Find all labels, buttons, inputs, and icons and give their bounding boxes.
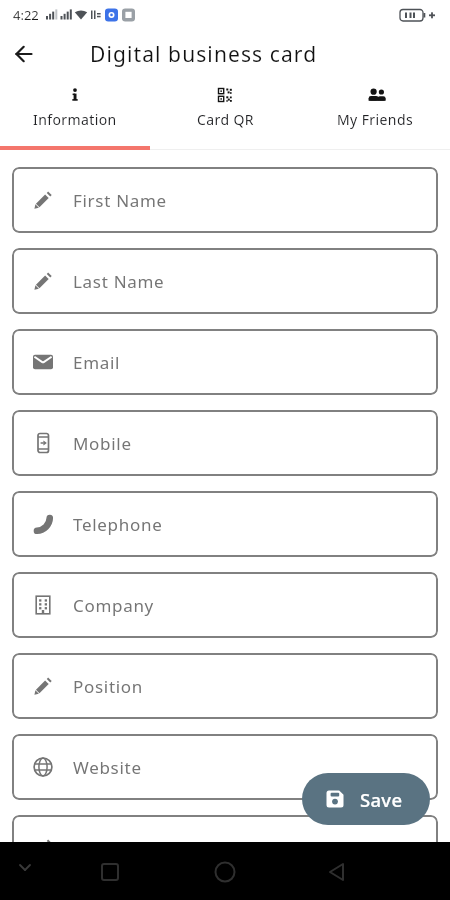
- staticText: Save: [360, 787, 403, 812]
- button[interactable]: Last Name: [12, 248, 438, 314]
- staticText: Position: [73, 675, 144, 698]
- staticText: Email: [73, 351, 121, 374]
- staticText: Last Name: [73, 270, 165, 293]
- button[interactable]: Mobile: [12, 410, 438, 476]
- staticText: Card QR: [197, 110, 254, 129]
- staticText: Website: [73, 756, 142, 779]
- staticText: Company: [73, 594, 154, 617]
- staticText: Telephone: [73, 513, 163, 536]
- button[interactable]: Address: [12, 815, 438, 881]
- button[interactable]: First Name: [12, 167, 438, 233]
- staticText: My Friends: [337, 110, 414, 129]
- button[interactable]: Save: [302, 773, 430, 825]
- staticText: Digital business card: [90, 40, 318, 69]
- staticText: Address: [73, 837, 143, 860]
- button[interactable]: Company: [12, 572, 438, 638]
- staticText: Mobile: [73, 432, 132, 455]
- button[interactable]: Information: [0, 78, 150, 150]
- staticText: Information: [33, 110, 117, 129]
- button[interactable]: [300, 842, 450, 900]
- button[interactable]: Card QR: [150, 78, 300, 150]
- button[interactable]: Telephone: [12, 491, 438, 557]
- button[interactable]: [0, 842, 150, 900]
- button[interactable]: [0, 30, 48, 78]
- button[interactable]: Email: [12, 329, 438, 395]
- button[interactable]: Website: [12, 734, 438, 800]
- staticText: First Name: [73, 189, 167, 212]
- button[interactable]: My Friends: [300, 78, 450, 150]
- button[interactable]: [150, 842, 300, 900]
- button[interactable]: Position: [12, 653, 438, 719]
- staticText: 4:22: [13, 6, 39, 24]
